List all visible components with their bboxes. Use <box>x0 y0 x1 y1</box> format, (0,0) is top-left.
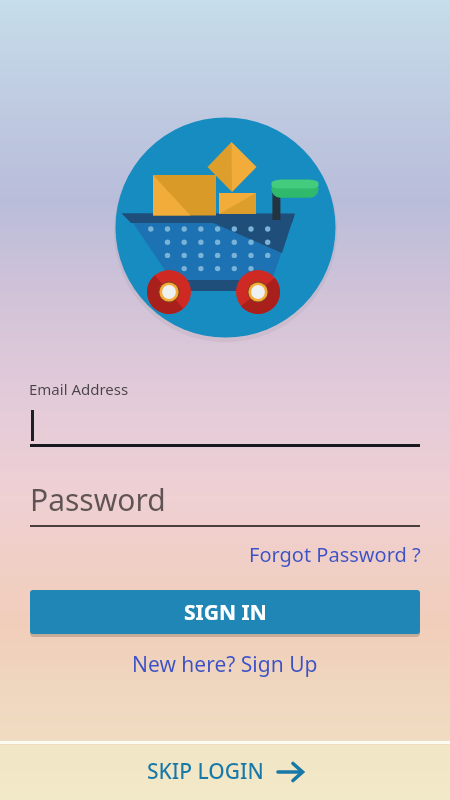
staticText: SKIP LOGIN <box>147 757 264 786</box>
button[interactable]: Forgot Password ? <box>249 541 421 568</box>
staticText: SIGN IN <box>184 598 267 627</box>
staticText: Email Address <box>29 379 129 399</box>
button[interactable]: New here? Sign Up <box>132 650 318 679</box>
button[interactable] <box>30 399 420 447</box>
button[interactable]: SIGN IN <box>30 590 420 634</box>
staticText: Password <box>30 479 166 520</box>
button[interactable]: SKIP LOGIN <box>147 757 304 786</box>
button[interactable] <box>30 479 420 527</box>
